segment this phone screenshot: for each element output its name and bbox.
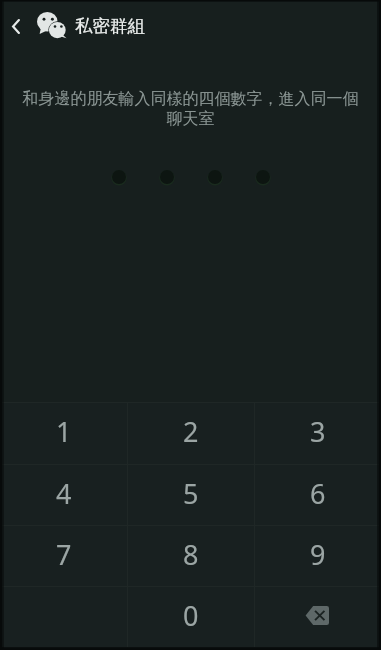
button[interactable]: 4 bbox=[0, 465, 127, 525]
staticText: 6 bbox=[310, 475, 326, 512]
button[interactable]: 6 bbox=[255, 465, 381, 525]
button[interactable]: 7 bbox=[0, 526, 127, 586]
button[interactable]: 2 bbox=[128, 403, 254, 464]
button[interactable]: Delete bbox=[255, 587, 381, 647]
button[interactable]: 0 bbox=[128, 587, 254, 647]
button[interactable]: 8 bbox=[128, 526, 254, 586]
staticText: 4 bbox=[56, 475, 72, 512]
staticText: 0 bbox=[183, 597, 199, 634]
staticText: 7 bbox=[56, 536, 72, 573]
button[interactable]: 5 bbox=[128, 465, 254, 525]
staticText: 私密群組 bbox=[75, 15, 145, 37]
staticText: 5 bbox=[183, 475, 199, 512]
staticText: 1 bbox=[56, 413, 72, 450]
staticText: 和身邊的朋友輸入同樣的四個數字，進入同一個聊天室 bbox=[20, 89, 361, 129]
button[interactable]: 3 bbox=[255, 403, 381, 464]
button[interactable]: Back bbox=[0, 0, 30, 52]
staticText: 2 bbox=[183, 413, 199, 450]
button[interactable]: 1 bbox=[0, 403, 127, 464]
button[interactable]: 9 bbox=[255, 526, 381, 586]
staticText: 3 bbox=[310, 413, 326, 450]
staticText: 9 bbox=[310, 536, 326, 573]
staticText: 8 bbox=[183, 536, 199, 573]
